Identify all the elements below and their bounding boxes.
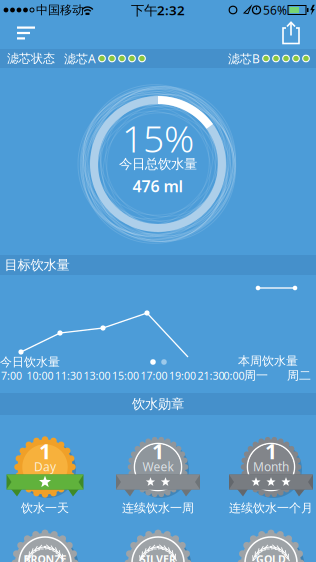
staticText: 56% <box>263 2 287 18</box>
staticText: 下午2:32 <box>131 1 185 19</box>
staticText: 15:00 <box>112 368 139 383</box>
button[interactable]: SILVER <box>108 525 208 562</box>
staticText: 目标饮水量 <box>4 257 69 273</box>
button[interactable]: 1 <box>221 427 316 529</box>
staticText: 滤芯B <box>228 50 260 66</box>
staticText: 10:00 <box>26 368 53 383</box>
staticText: Week <box>142 458 173 474</box>
staticText: 周二 <box>287 368 311 383</box>
staticText: 今日饮水量 <box>0 355 60 369</box>
staticText: 连续饮水一个月 <box>229 501 313 515</box>
staticText: 0:00 <box>223 368 244 383</box>
staticText: 中国移动 <box>36 3 84 17</box>
staticText: GOLD <box>256 552 286 562</box>
staticText: 饮水勋章 <box>132 396 184 412</box>
staticText: BRONZE <box>23 552 66 562</box>
staticText: 1 <box>265 437 277 465</box>
staticText: SILVER <box>140 552 176 562</box>
staticText: 476 ml <box>132 175 183 197</box>
staticText: 19:00 <box>169 368 196 383</box>
staticText: 11:30 <box>55 368 82 383</box>
staticText: 21:30 <box>197 368 224 383</box>
button[interactable]: GOLD <box>221 525 316 562</box>
staticText: 滤芯A <box>64 50 96 66</box>
staticText: Month <box>253 458 289 474</box>
staticText: Day <box>34 458 56 474</box>
staticText: 连续饮水一周 <box>122 501 194 515</box>
staticText: 13:00 <box>83 368 110 383</box>
staticText: 1 <box>39 437 51 465</box>
staticText: 周一 <box>244 368 268 383</box>
button[interactable]: 1 <box>0 427 95 529</box>
staticText: 饮水一天 <box>21 501 69 515</box>
staticText: 滤芯状态 <box>7 51 55 66</box>
staticText: 7:00 <box>1 368 22 383</box>
button[interactable]: BRONZE <box>0 525 95 562</box>
staticText: 今日总饮水量 <box>119 156 197 172</box>
button[interactable] <box>266 19 316 48</box>
button[interactable]: 1 <box>108 427 208 529</box>
button[interactable] <box>0 19 54 48</box>
staticText: 17:00 <box>140 368 167 383</box>
staticText: 15% <box>122 113 194 163</box>
staticText: 1 <box>152 437 164 465</box>
staticText: 本周饮水量 <box>238 354 298 368</box>
